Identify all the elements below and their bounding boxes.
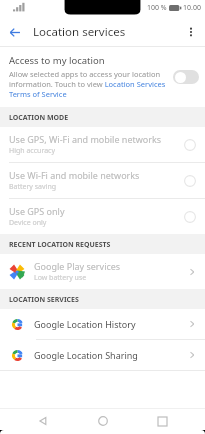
button[interactable]: Back [0,18,28,46]
button[interactable]: Use Wi-Fi and mobile networks [0,163,205,198]
button[interactable]: Home [86,408,120,434]
button[interactable]: Google Play services [0,254,205,289]
staticText: 100 % [147,3,167,13]
staticText: Battery saving [9,182,57,192]
button[interactable]: More options [177,18,205,46]
button[interactable]: Google Location History [0,309,205,339]
button[interactable]: Use GPS only [0,199,205,234]
staticText: Access to my location [9,54,105,67]
button[interactable]: Access to my location toggle [173,70,199,84]
staticText: Google Location Sharing [34,349,138,361]
staticText: Allow selected apps to access your locat… [9,69,167,99]
staticText: Use Wi-Fi and mobile networks [9,169,140,181]
staticText: Low battery use [34,273,87,283]
button[interactable]: Use GPS, Wi-Fi and mobile networks [0,127,205,162]
button[interactable]: Access to my location [0,47,205,107]
staticText: Google Location History [34,318,136,330]
staticText: Location services [33,24,126,40]
staticText: High accuracy [9,146,56,156]
staticText: 10.00 [183,3,201,13]
staticText: Google Play services [34,260,121,272]
button[interactable]: Recents [145,408,179,434]
staticText: Use GPS, Wi-Fi and mobile networks [9,133,162,145]
staticText: LOCATION MODE [9,113,69,123]
button[interactable]: Google Location Sharing [0,340,205,370]
staticText: RECENT LOCATION REQUESTS [9,240,111,250]
staticText: Use GPS only [9,205,65,217]
staticText: LOCATION SERVICES [9,295,79,305]
staticText: Device only [9,218,47,228]
button[interactable]: Back [26,408,60,434]
